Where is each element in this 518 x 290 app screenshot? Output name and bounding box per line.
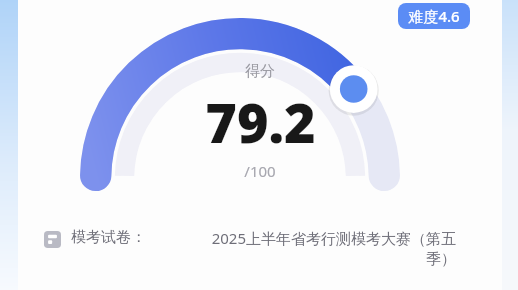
staticText: 2025上半年省考行测模考大赛（第五季） (188, 228, 456, 268)
staticText: 79.2 (205, 85, 316, 159)
staticText: 模考试卷： (71, 228, 146, 247)
other: Exam paper (44, 231, 61, 248)
staticText: 难度4.6 (408, 6, 460, 26)
staticText: 得分 (245, 62, 275, 81)
staticText: /100 (244, 161, 276, 181)
button[interactable]: 难度4.6 (398, 3, 470, 29)
button[interactable]: Exam paper (44, 228, 474, 268)
